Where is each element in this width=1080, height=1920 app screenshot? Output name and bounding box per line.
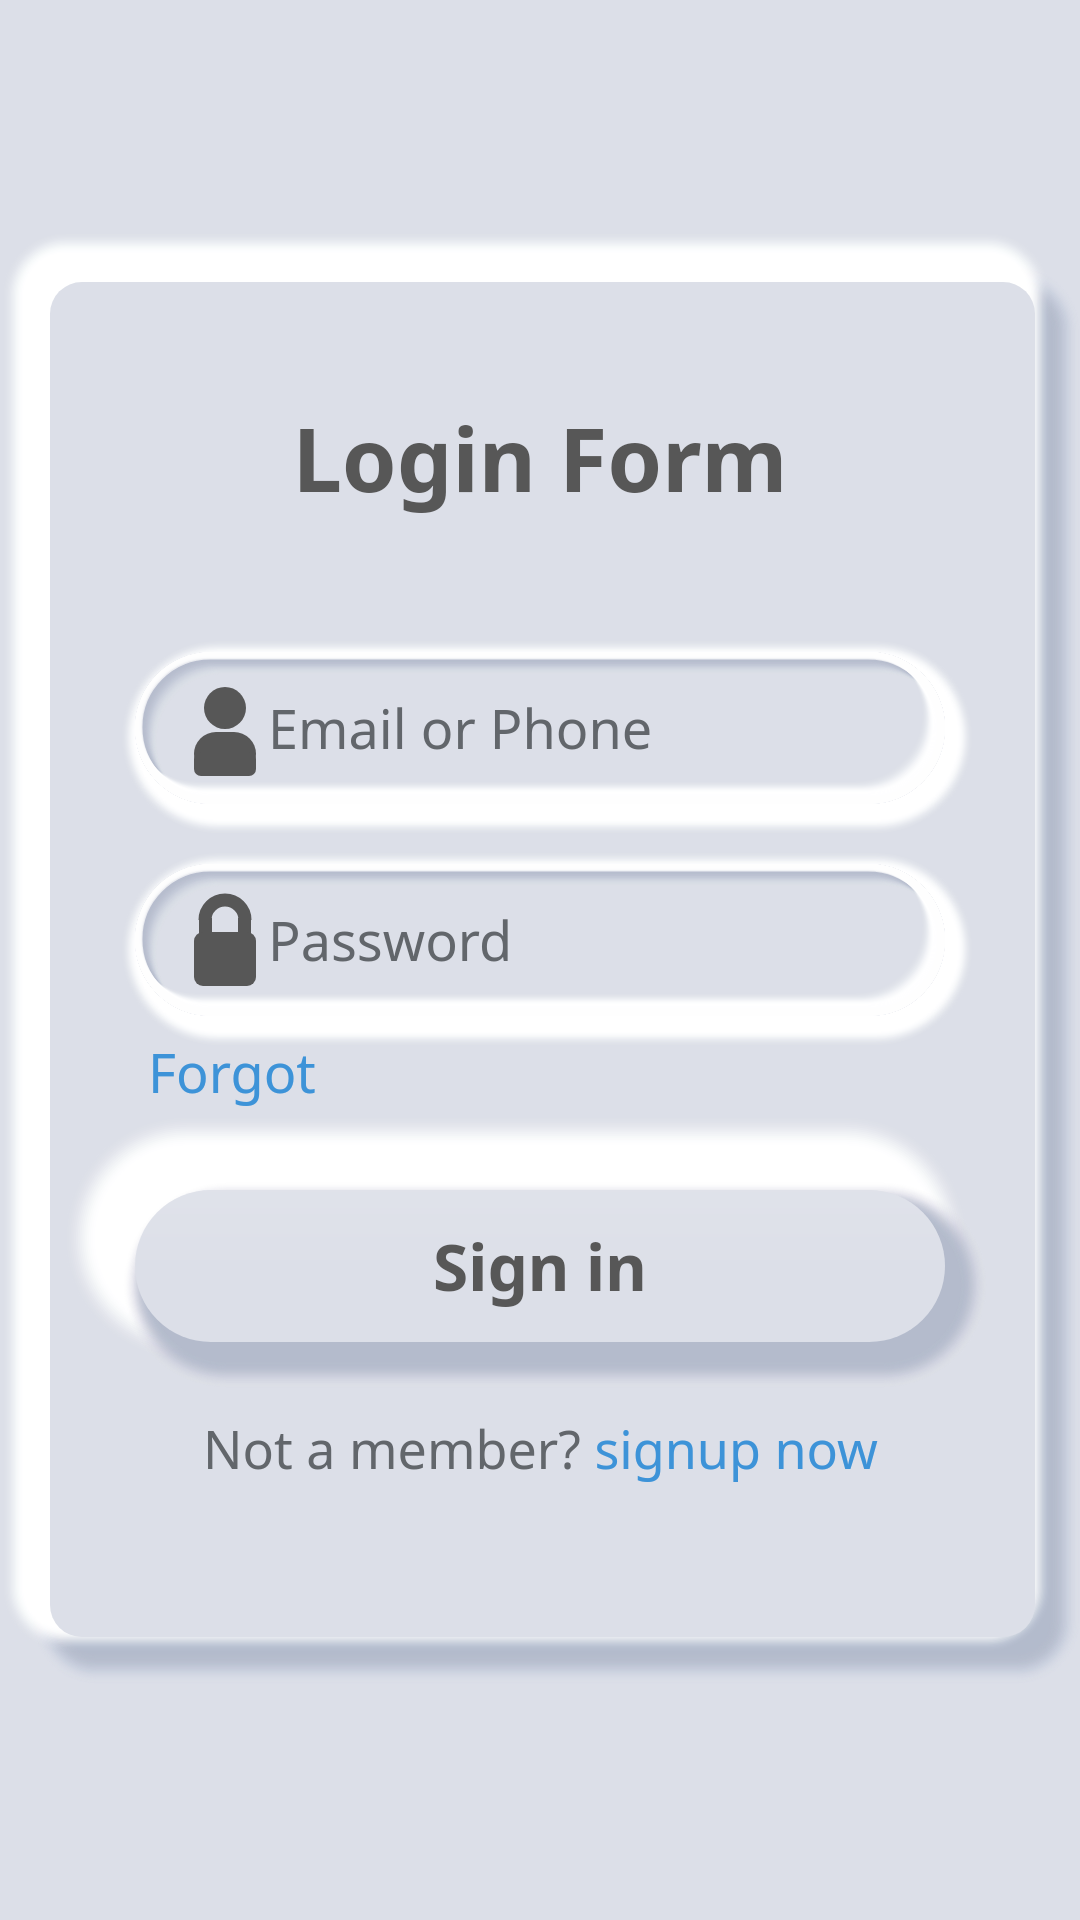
staticText: Password <box>268 903 513 977</box>
button[interactable]: Email or Phone <box>135 652 945 804</box>
button[interactable]: Not a member? signup now <box>190 1400 890 1496</box>
button[interactable]: Password <box>135 864 945 1016</box>
button[interactable]: Forgot Password? <box>148 1035 568 1125</box>
staticText: Login Form <box>0 398 1080 518</box>
staticText: Email or Phone <box>268 691 653 765</box>
button[interactable]: Sign in <box>135 1190 945 1342</box>
staticText: Not a member? signup now <box>203 1413 878 1484</box>
staticText: Forgot Password? <box>148 1035 568 1125</box>
staticText: Sign in <box>433 1223 647 1310</box>
